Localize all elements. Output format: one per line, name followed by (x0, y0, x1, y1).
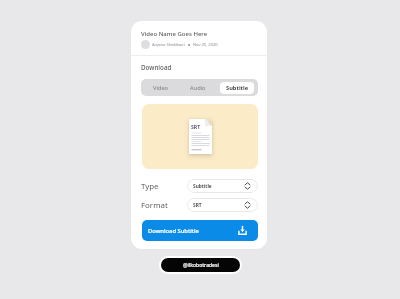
staticText: Video Name Goes Here (141, 30, 208, 38)
staticText: Download (141, 63, 172, 72)
button[interactable]: Subtitle (187, 179, 258, 193)
staticText: Subtitle (226, 84, 249, 92)
other: Download (238, 226, 247, 235)
staticText: Nov 25, 2020 (193, 42, 218, 48)
staticText: Video (153, 84, 169, 92)
staticText: @ilkobotradesi (183, 262, 219, 269)
staticText: Format (141, 200, 168, 211)
staticText: Audio (190, 84, 206, 92)
button[interactable]: Download Subtitle (142, 220, 258, 241)
staticText: SRT (191, 123, 201, 130)
staticText: Download Subtitle (148, 227, 199, 235)
staticText: SRT (193, 202, 202, 209)
staticText: Subtitle (193, 183, 212, 190)
button[interactable]: SRT (187, 198, 258, 212)
staticText: Aryana Shakibaei (152, 42, 185, 48)
button[interactable]: Video (143, 82, 179, 94)
button[interactable]: @ilkobotradesi (161, 258, 240, 272)
button[interactable]: Audio (180, 82, 216, 94)
button[interactable]: Subtitle (220, 82, 254, 94)
staticText: Type (141, 181, 159, 192)
